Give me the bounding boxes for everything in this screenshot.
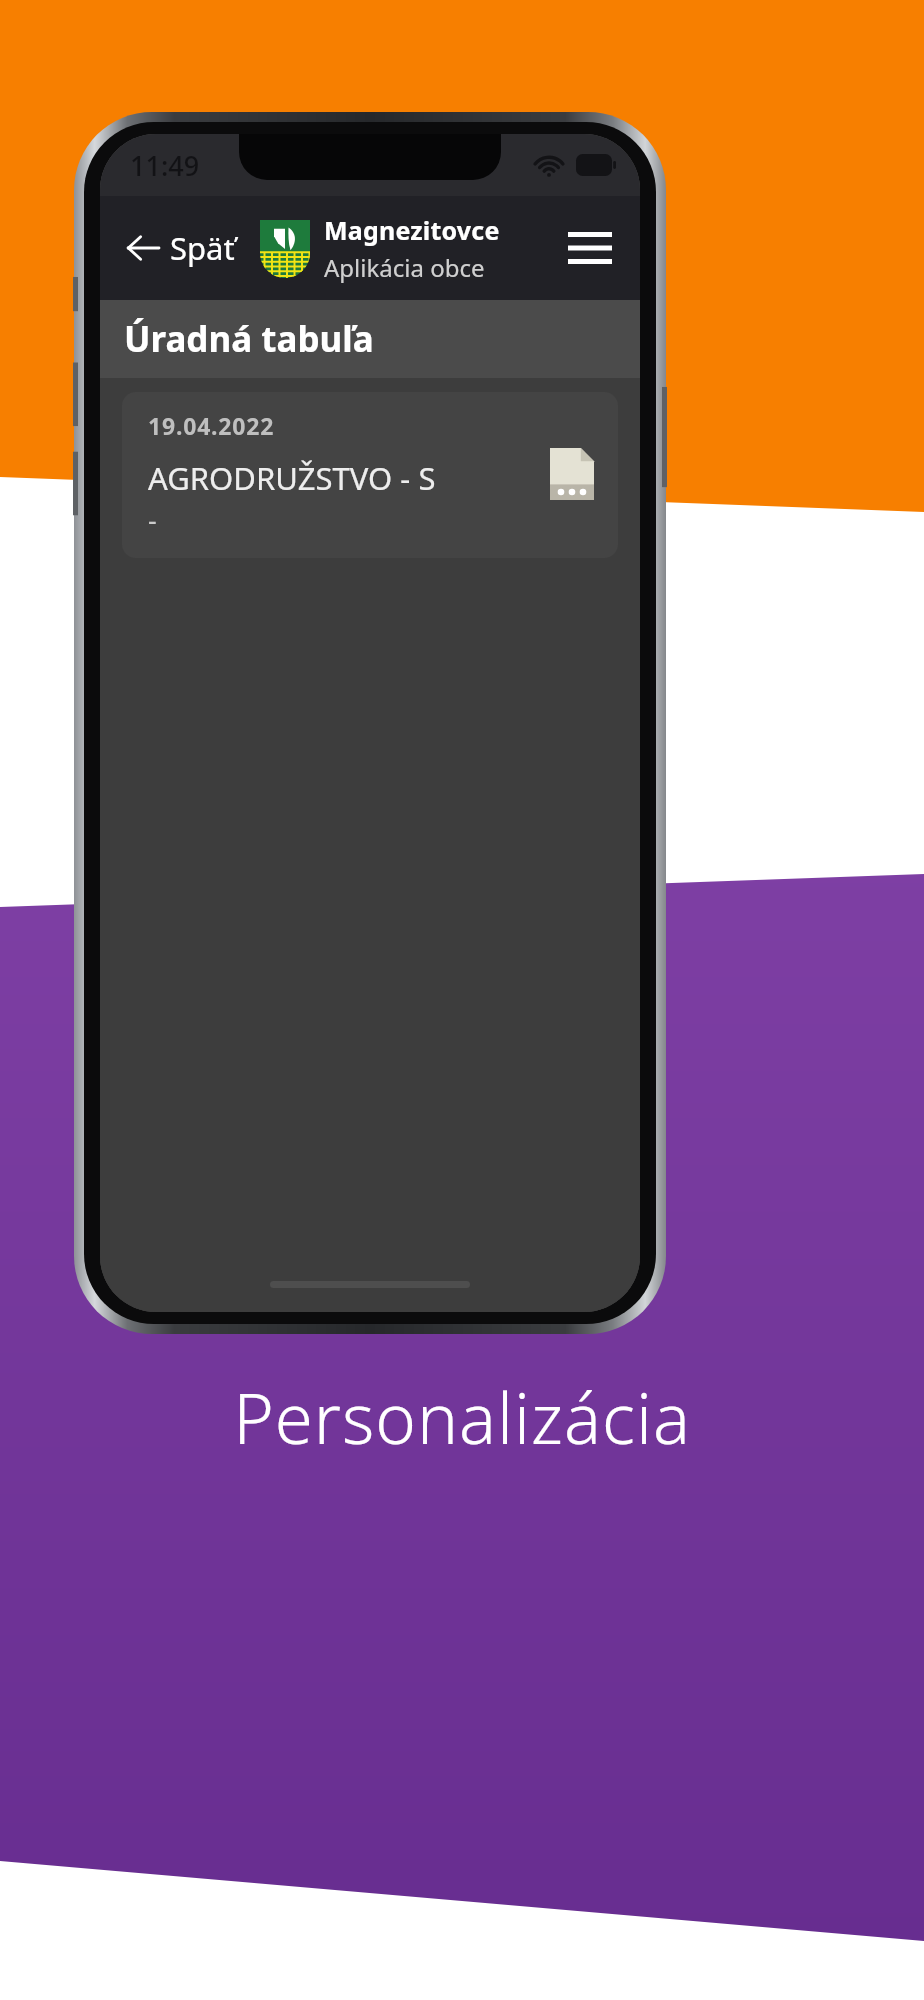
staticText: 11:49 xyxy=(130,147,200,184)
staticText: Personalizácia xyxy=(233,1370,691,1464)
staticText: Späť xyxy=(170,227,235,269)
button[interactable]: Späť xyxy=(116,217,245,279)
button[interactable]: 19.04.2022 xyxy=(122,392,618,558)
staticText: Magnezitovce xyxy=(324,213,500,247)
staticText: - xyxy=(148,501,157,538)
staticText: 19.04.2022 xyxy=(148,410,275,441)
staticText: Aplikácia obce xyxy=(324,251,485,284)
staticText: AGRODRUŽSTVO - S xyxy=(148,457,436,499)
button[interactable]: Menu xyxy=(558,222,622,274)
staticText: Úradná tabuľa xyxy=(124,315,374,363)
